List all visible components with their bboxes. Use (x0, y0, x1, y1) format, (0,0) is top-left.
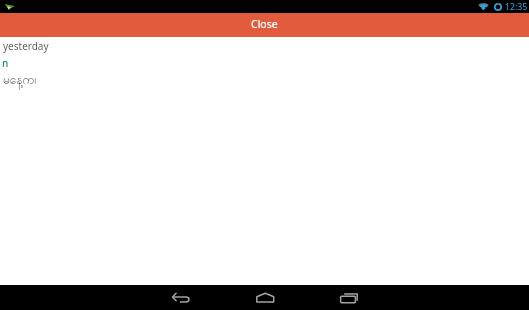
staticText: မနေ့က၊ (3, 72, 37, 90)
staticText: 12:35 (505, 1, 528, 13)
button[interactable]: Home (223, 285, 307, 310)
button[interactable]: Back (139, 285, 223, 310)
staticText: n (2, 56, 9, 70)
staticText: yesterday (3, 39, 49, 53)
staticText: Close (251, 17, 278, 31)
button[interactable]: Recent apps (307, 285, 391, 310)
button[interactable]: yesterday (0, 37, 529, 92)
button[interactable]: Close (0, 13, 529, 37)
